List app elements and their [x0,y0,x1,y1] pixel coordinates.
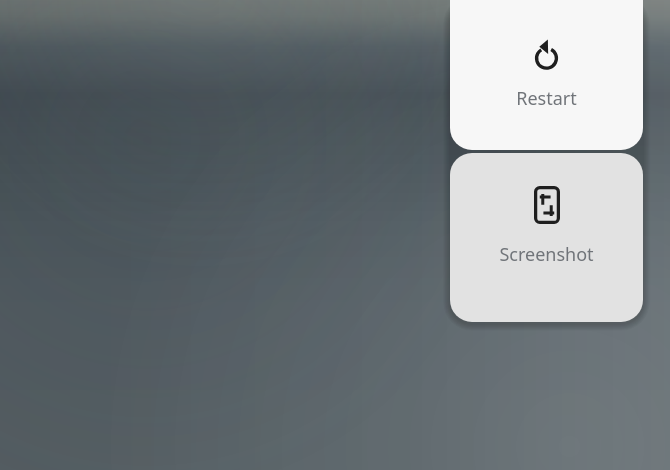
other: Restart [532,42,561,71]
staticText: Screenshot [499,242,594,267]
button[interactable]: Restart [450,0,643,150]
button[interactable]: Screenshot [450,153,643,322]
staticText: Restart [516,86,577,111]
other: Screenshot [534,186,560,224]
